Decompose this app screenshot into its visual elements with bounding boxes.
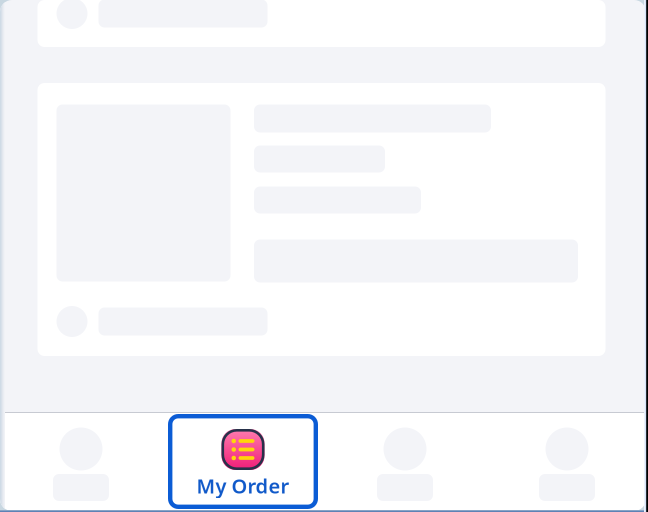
button[interactable]: Home	[0, 413, 162, 510]
button[interactable]: Profile	[486, 413, 648, 510]
staticText: My Order	[196, 472, 289, 499]
button[interactable]: Favourites	[324, 413, 486, 510]
button[interactable]: My Order	[162, 413, 324, 510]
